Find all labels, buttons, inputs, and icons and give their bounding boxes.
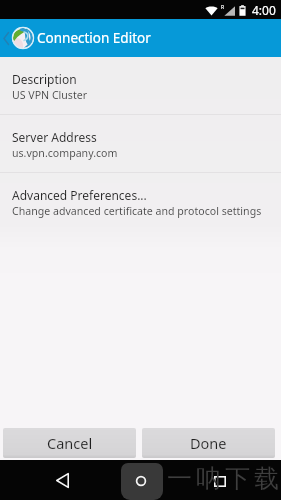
button[interactable]: Advanced Preferences... xyxy=(0,173,281,230)
staticText: US VPN Cluster xyxy=(12,88,88,102)
staticText: R xyxy=(221,4,225,11)
staticText: 一呐下载 xyxy=(165,463,281,494)
button[interactable]: Cancel xyxy=(3,428,136,458)
button[interactable]: Description xyxy=(0,57,281,114)
staticText: Done xyxy=(190,433,227,453)
button[interactable]: Server Address xyxy=(0,115,281,172)
button[interactable]: Back xyxy=(36,460,89,500)
staticText: Cancel xyxy=(47,433,93,453)
button[interactable]: Home xyxy=(116,460,167,500)
button[interactable]: Done xyxy=(142,428,275,458)
button[interactable]: Navigate up xyxy=(0,19,12,57)
staticText: Connection Editor xyxy=(37,29,151,47)
staticText: Server Address xyxy=(12,129,97,145)
staticText: Advanced Preferences... xyxy=(12,187,147,203)
button[interactable]: Recent apps xyxy=(194,460,245,500)
staticText: 4:00 xyxy=(252,2,276,18)
staticText: us.vpn.company.com xyxy=(12,146,118,160)
staticText: Description xyxy=(12,71,77,87)
staticText: Change advanced certificate and protocol… xyxy=(12,204,262,218)
